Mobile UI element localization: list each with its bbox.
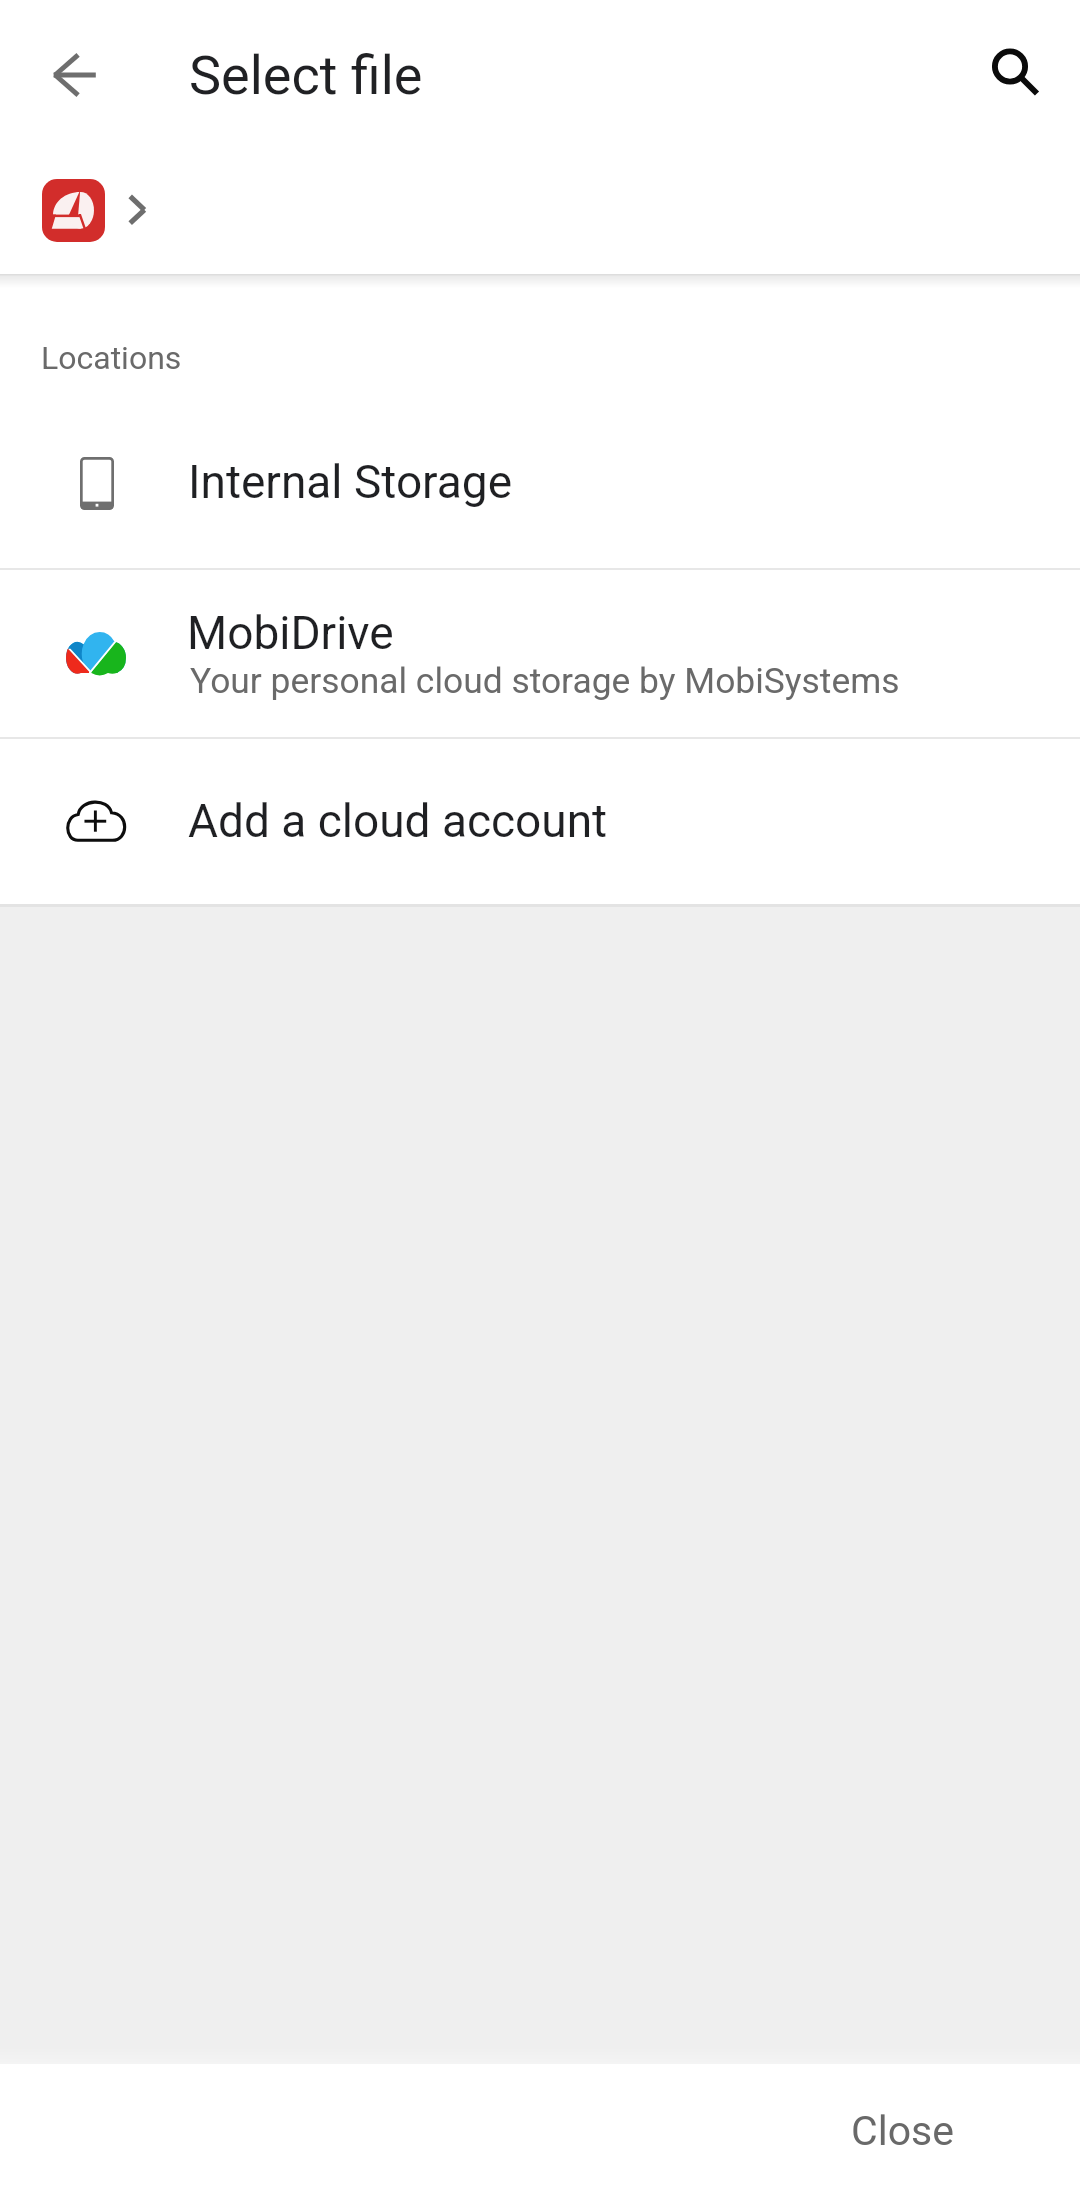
staticText: MobiDrive: [187, 606, 394, 660]
button[interactable]: Add a cloud account: [0, 739, 1080, 906]
staticText: Select file: [189, 44, 423, 107]
staticText: Close: [851, 2107, 954, 2155]
staticText: Add a cloud account: [188, 794, 608, 848]
button[interactable]: Search: [966, 24, 1062, 120]
button[interactable]: Open folder: [122, 189, 152, 231]
staticText: Your personal cloud storage by MobiSyste…: [190, 660, 900, 701]
button[interactable]: Close: [787, 2086, 1017, 2176]
button[interactable]: Back: [27, 27, 123, 123]
button[interactable]: MobiDrive: [0, 570, 1080, 737]
staticText: Locations: [41, 339, 182, 377]
button[interactable]: PDF root folder: [42, 179, 105, 242]
button[interactable]: Internal Storage: [0, 400, 1080, 568]
staticText: Internal Storage: [188, 455, 513, 509]
